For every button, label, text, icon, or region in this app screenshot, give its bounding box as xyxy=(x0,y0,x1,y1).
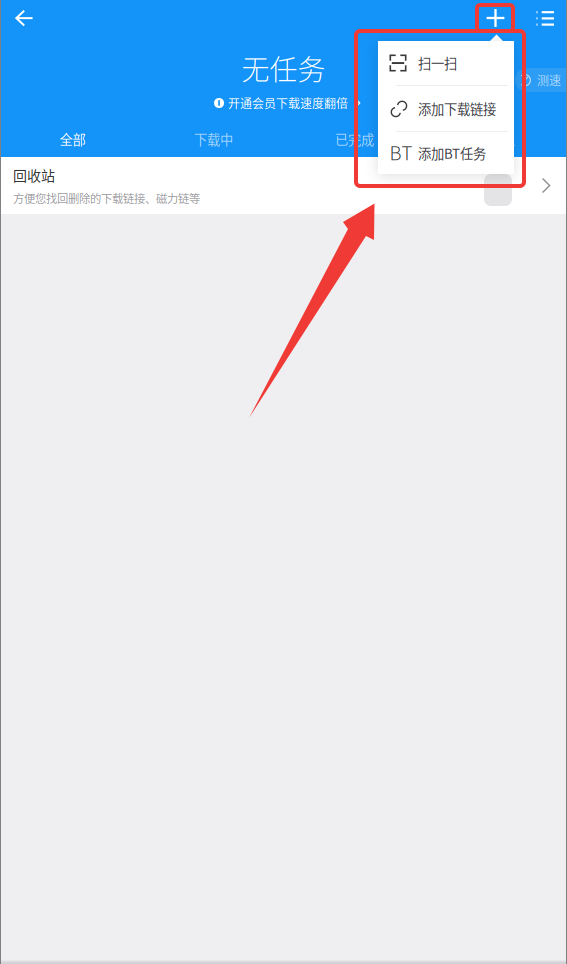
button[interactable]: 开通会员下载速度翻倍 xyxy=(3,94,567,112)
button[interactable]: 回收站 xyxy=(0,157,567,214)
staticText: 已完成 xyxy=(335,129,374,149)
staticText: 开通会员下载速度翻倍 xyxy=(228,94,348,112)
button[interactable]: 全部 xyxy=(2,125,143,153)
button[interactable]: Task list xyxy=(526,4,564,32)
button[interactable]: 扫一扫 xyxy=(378,41,514,85)
staticText: 测速 xyxy=(537,71,561,89)
staticText: 无任务 xyxy=(241,48,325,88)
button[interactable]: 已完成 xyxy=(284,125,425,153)
staticText: BT xyxy=(389,138,412,165)
staticText: 扫一扫 xyxy=(418,53,457,73)
button[interactable]: Add task xyxy=(477,5,514,31)
staticText: 方便您找回删除的下载链接、磁力链等 xyxy=(13,190,200,206)
staticText: 已停止 xyxy=(476,129,515,149)
button[interactable]: 下载中 xyxy=(143,125,284,153)
button[interactable]: 已停止 xyxy=(425,125,566,153)
staticText: 回收站 xyxy=(13,165,55,185)
staticText: 添加BT任务 xyxy=(418,143,486,163)
button[interactable]: 添加下载链接 xyxy=(378,86,514,131)
staticText: 下载中 xyxy=(194,129,233,149)
staticText: 全部 xyxy=(59,129,85,149)
button[interactable]: Back xyxy=(0,0,48,36)
staticText: 添加下载链接 xyxy=(418,99,496,118)
button[interactable]: BT xyxy=(378,132,514,174)
button[interactable]: 测速 xyxy=(515,68,567,92)
